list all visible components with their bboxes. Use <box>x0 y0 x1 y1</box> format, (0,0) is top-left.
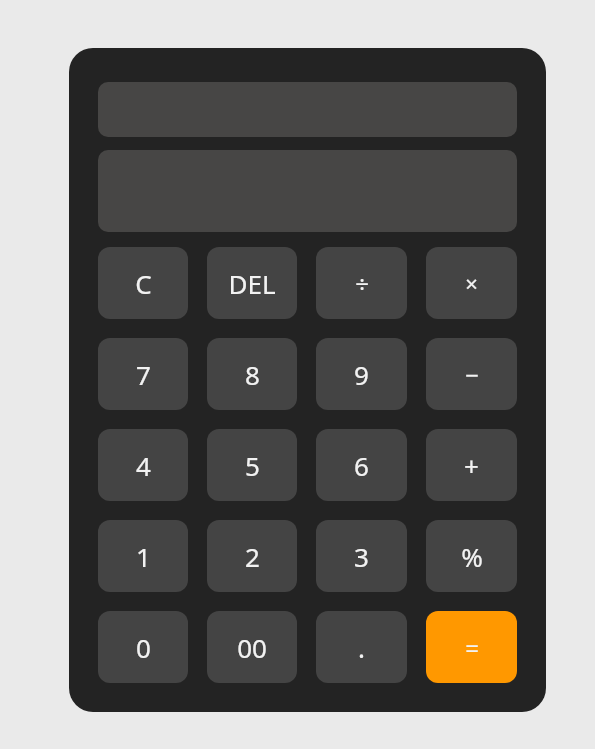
button[interactable]: 6 <box>316 429 407 501</box>
button[interactable]: Divide <box>316 247 407 319</box>
button[interactable]: 3 <box>316 520 407 592</box>
staticText: 6 <box>354 448 369 483</box>
staticText: − <box>465 358 479 391</box>
button[interactable]: Minus <box>426 338 517 410</box>
button[interactable]: 9 <box>316 338 407 410</box>
staticText: 00 <box>237 630 267 665</box>
staticText: 4 <box>136 448 151 483</box>
staticText: 2 <box>245 539 260 574</box>
button[interactable]: 00 <box>207 611 297 683</box>
staticText: % <box>461 539 483 574</box>
staticText: 3 <box>354 539 369 574</box>
button[interactable]: Equals <box>426 611 517 683</box>
button[interactable]: 2 <box>207 520 297 592</box>
button[interactable]: 1 <box>98 520 188 592</box>
staticText: 8 <box>245 357 260 392</box>
button[interactable]: 0 <box>98 611 188 683</box>
staticText: + <box>464 448 479 483</box>
staticText: . <box>358 630 365 665</box>
staticText: 9 <box>354 357 369 392</box>
staticText: 0 <box>136 630 151 665</box>
staticText: 1 <box>136 539 151 574</box>
button[interactable]: 8 <box>207 338 297 410</box>
button[interactable]: 5 <box>207 429 297 501</box>
button[interactable]: Clear <box>98 247 188 319</box>
button[interactable]: Percent <box>426 520 517 592</box>
button[interactable]: Multiply <box>426 247 517 319</box>
staticText: C <box>135 266 152 301</box>
staticText: 5 <box>245 448 260 483</box>
button[interactable]: 7 <box>98 338 188 410</box>
button[interactable]: Decimal point <box>316 611 407 683</box>
staticText: DEL <box>228 266 276 301</box>
button[interactable]: Delete <box>207 247 297 319</box>
staticText: = <box>465 631 479 664</box>
staticText: ÷ <box>355 267 369 300</box>
staticText: 7 <box>136 357 151 392</box>
button[interactable]: 4 <box>98 429 188 501</box>
button[interactable]: Plus <box>426 429 517 501</box>
staticText: × <box>465 268 478 298</box>
